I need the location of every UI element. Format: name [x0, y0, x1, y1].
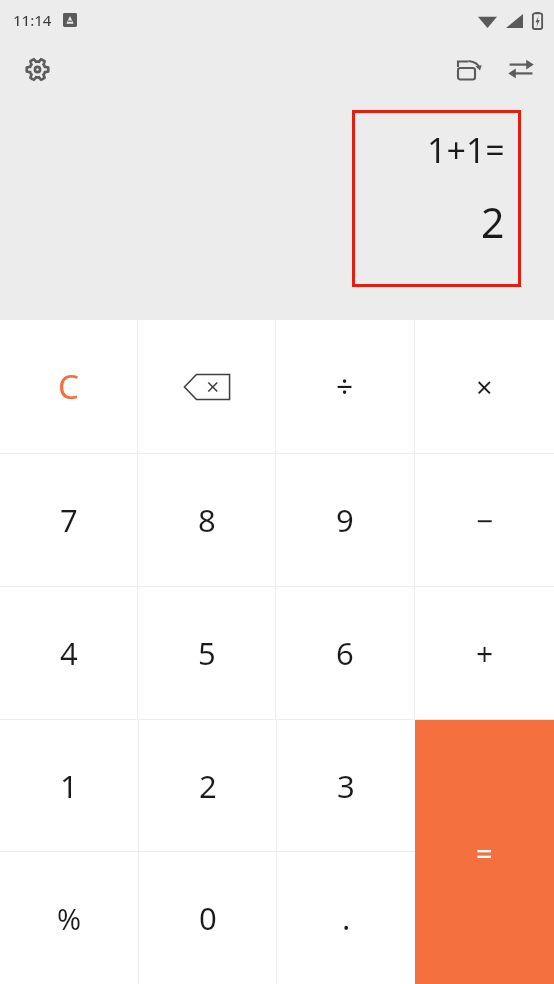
staticText: C: [58, 364, 79, 409]
button[interactable]: 8: [138, 454, 275, 586]
staticText: 4: [60, 632, 78, 674]
button[interactable]: Settings: [11, 43, 63, 95]
button[interactable]: 7: [0, 454, 137, 586]
button[interactable]: 6: [276, 587, 414, 719]
staticText: 5: [198, 632, 216, 674]
button[interactable]: .: [277, 852, 415, 984]
button[interactable]: 0: [139, 852, 276, 984]
staticText: 11:14: [13, 10, 52, 30]
button[interactable]: ÷: [276, 320, 414, 453]
button[interactable]: C: [0, 320, 137, 453]
button[interactable]: 3: [277, 720, 415, 851]
button[interactable]: %: [0, 852, 138, 984]
staticText: 9: [336, 499, 354, 541]
button[interactable]: 9: [276, 454, 414, 586]
staticText: ÷: [336, 366, 354, 407]
staticText: 1: [60, 765, 78, 807]
staticText: −: [476, 500, 494, 541]
staticText: .: [342, 897, 351, 939]
staticText: 2: [481, 194, 505, 250]
button[interactable]: 5: [138, 587, 275, 719]
button[interactable]: 2: [139, 720, 276, 851]
staticText: %: [57, 899, 82, 938]
staticText: 1+1=: [427, 127, 505, 173]
staticText: 6: [336, 632, 354, 674]
staticText: 2: [199, 765, 217, 807]
button[interactable]: ×: [415, 320, 554, 453]
staticText: ×: [476, 367, 493, 406]
button[interactable]: Unit converter: [495, 43, 547, 95]
button[interactable]: 1: [0, 720, 138, 851]
button[interactable]: Screen rotation: [443, 43, 495, 95]
staticText: 7: [60, 499, 78, 541]
button[interactable]: −: [415, 454, 554, 586]
button[interactable]: +: [415, 587, 554, 719]
button[interactable]: =: [415, 720, 554, 984]
staticText: 3: [337, 765, 355, 807]
button[interactable]: Backspace: [138, 320, 275, 453]
staticText: 0: [199, 897, 217, 939]
staticText: +: [476, 633, 494, 674]
staticText: =: [476, 833, 493, 872]
staticText: 8: [198, 499, 216, 541]
button[interactable]: 4: [0, 587, 137, 719]
